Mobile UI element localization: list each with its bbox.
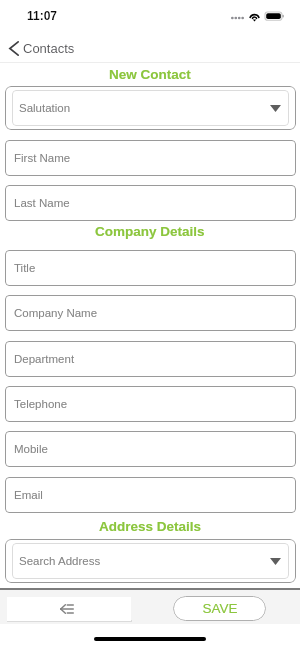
staticText: Last Name	[14, 197, 70, 210]
button[interactable]: Telephone	[5, 386, 296, 422]
staticText: 11:07	[27, 9, 58, 22]
staticText: Company Name	[14, 307, 98, 320]
staticText: Telephone	[14, 398, 68, 411]
staticText: Search Address	[19, 555, 101, 568]
button[interactable]: Contacts	[4, 37, 83, 59]
button[interactable]: Back	[7, 597, 131, 621]
other: Wi-Fi	[249, 12, 260, 20]
other: Battery	[265, 12, 285, 21]
button[interactable]: Search Address	[5, 539, 296, 583]
button[interactable]: Email	[5, 477, 296, 513]
staticText: First Name	[14, 152, 71, 165]
button[interactable]: First Name	[5, 140, 296, 176]
staticText: Mobile	[14, 443, 48, 456]
button[interactable]: Last Name	[5, 185, 296, 221]
button[interactable]: SAVE	[173, 596, 266, 621]
staticText: Salutation	[19, 102, 71, 115]
button[interactable]: Mobile	[5, 431, 296, 467]
staticText: Address Details	[99, 519, 202, 534]
button[interactable]: Company Name	[5, 295, 296, 331]
staticText: Department	[14, 353, 75, 366]
button[interactable]: Title	[5, 250, 296, 286]
staticText: SAVE	[202, 601, 238, 616]
button[interactable]: Department	[5, 341, 296, 377]
button[interactable]: Salutation	[5, 86, 296, 130]
staticText: Email	[14, 489, 43, 502]
staticText: Title	[14, 262, 36, 275]
staticText: New Contact	[109, 67, 191, 82]
staticText: Contacts	[23, 41, 75, 56]
staticText: Company Details	[95, 224, 205, 239]
